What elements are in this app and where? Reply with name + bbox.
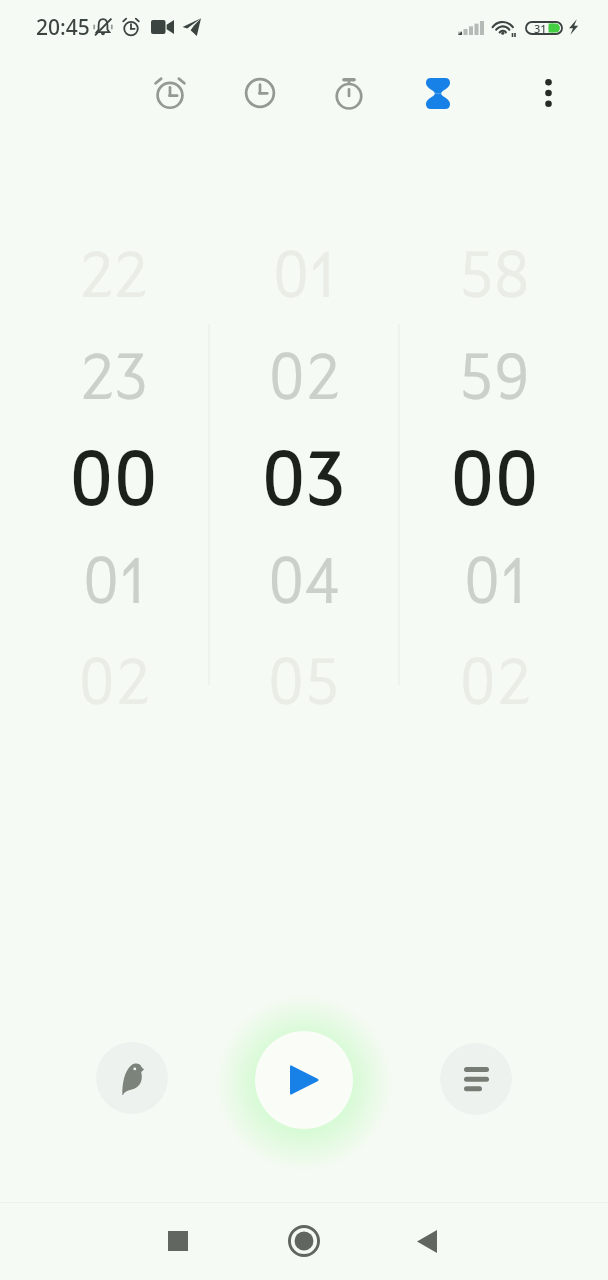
button[interactable]: 22 [18, 228, 208, 736]
staticText: 23 [80, 351, 148, 411]
staticText: 02 [78, 656, 150, 716]
button[interactable]: Presets [440, 1043, 512, 1115]
button[interactable]: Stopwatch [320, 64, 378, 122]
staticText: 01 [82, 555, 146, 615]
staticText: 59 [459, 351, 530, 411]
button[interactable]: 58 [399, 228, 590, 736]
staticText: 31 [534, 21, 547, 35]
staticText: 02 [268, 351, 340, 411]
button[interactable]: More options [519, 64, 577, 122]
staticText: 03 [261, 447, 346, 519]
button[interactable]: Home [274, 1211, 334, 1271]
button[interactable]: Back [397, 1211, 457, 1271]
button[interactable]: Alarm [141, 64, 199, 122]
button[interactable]: Clock [231, 64, 289, 122]
button[interactable]: Recents [148, 1211, 208, 1271]
staticText: 00 [69, 447, 158, 519]
button[interactable]: Ringtone [96, 1042, 168, 1114]
staticText: 02 [459, 656, 531, 716]
staticText: 00 [450, 447, 539, 519]
button[interactable]: Timer [409, 64, 467, 122]
staticText: 22 [79, 249, 148, 309]
staticText: 05 [267, 656, 340, 716]
staticText: 04 [267, 555, 340, 615]
staticText: 58 [459, 249, 530, 309]
staticText: 20:45 [36, 13, 90, 42]
button[interactable]: Start timer [255, 1031, 353, 1129]
button[interactable]: 01 [208, 228, 399, 736]
staticText: 01 [272, 249, 336, 309]
staticText: 01 [463, 555, 527, 615]
